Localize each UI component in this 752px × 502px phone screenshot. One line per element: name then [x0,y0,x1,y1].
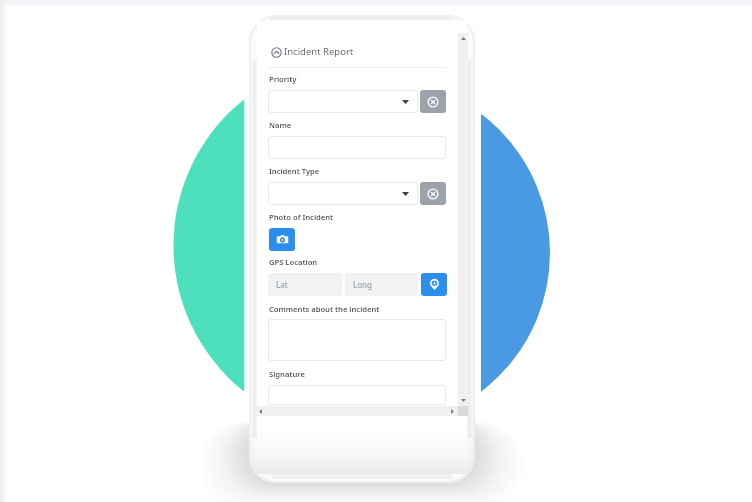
staticText: Incident Report [284,45,354,58]
staticText: Lat [276,279,288,290]
staticText: Priority [269,74,297,84]
staticText: Comments about the incident [269,304,380,314]
button[interactable] [268,136,446,159]
button[interactable]: Clear [420,182,446,205]
button[interactable]: Take photo [269,228,295,251]
button[interactable]: Clear [420,90,446,113]
staticText: Signature [269,369,305,379]
staticText: Name [269,120,292,130]
staticText: GPS Location [269,257,318,267]
button[interactable]: Incident Report [284,45,354,58]
button[interactable]: Long [345,273,418,296]
button[interactable] [268,182,418,205]
button[interactable] [268,319,446,361]
button[interactable]: Lat [268,273,342,296]
staticText: Photo of Incident [269,212,334,222]
button[interactable] [268,385,446,405]
staticText: Long [353,279,372,290]
button[interactable]: Get GPS location [421,273,447,296]
button[interactable] [268,90,418,113]
staticText: Incident Type [269,166,320,176]
